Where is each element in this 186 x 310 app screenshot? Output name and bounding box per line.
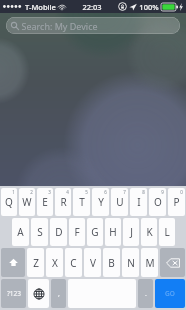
staticText: B (108, 256, 115, 270)
staticText: A (17, 225, 24, 239)
staticText: D (55, 225, 63, 239)
staticText: J (130, 225, 133, 239)
staticText: Q (5, 195, 13, 209)
button[interactable]: D (50, 218, 67, 246)
staticText: C (70, 256, 77, 270)
staticText: T-Mobile (25, 2, 56, 12)
staticText: G (91, 225, 99, 239)
button[interactable]: Search: My Device (6, 17, 180, 34)
staticText: X (52, 256, 58, 270)
staticText: L (164, 225, 170, 239)
staticText: 2 (30, 189, 33, 195)
staticText: K (146, 225, 153, 239)
button[interactable]: Z (27, 248, 44, 277)
staticText: Y (98, 195, 104, 209)
button[interactable]: Change keyboard (28, 279, 49, 308)
button[interactable]: Comma (51, 279, 66, 308)
staticText: 100% (139, 2, 159, 12)
staticText: W (22, 195, 32, 209)
button[interactable]: X (46, 248, 63, 277)
staticText: 22:03 (82, 2, 102, 12)
staticText: 4 (66, 189, 69, 195)
button[interactable]: I (130, 188, 147, 216)
button[interactable]: GO (155, 279, 185, 308)
button[interactable]: Y (92, 188, 109, 216)
button[interactable]: W (19, 188, 35, 216)
staticText: H (109, 225, 117, 239)
button[interactable]: M (141, 248, 158, 277)
button[interactable]: Backspace (160, 248, 185, 277)
button[interactable]: G (87, 218, 103, 246)
button[interactable]: R (55, 188, 71, 216)
button[interactable]: P (168, 188, 185, 216)
button[interactable]: Shift (1, 248, 25, 277)
staticText: , (58, 289, 60, 299)
button[interactable]: J (123, 218, 139, 246)
button[interactable]: E (37, 188, 53, 216)
button[interactable]: V (84, 248, 101, 277)
staticText: 3 (48, 189, 51, 195)
staticText: 7 (123, 189, 126, 195)
staticText: P (173, 195, 180, 209)
button[interactable]: L (159, 218, 175, 246)
button[interactable]: Period (138, 279, 153, 308)
staticText: O (154, 195, 162, 209)
button[interactable]: N (122, 248, 139, 277)
button[interactable]: B (103, 248, 120, 277)
button[interactable]: S (31, 218, 48, 246)
staticText: Search: My Device (21, 20, 98, 32)
staticText: 8 (142, 189, 145, 195)
button[interactable]: T (73, 188, 90, 216)
staticText: 5 (85, 189, 88, 195)
button[interactable]: K (141, 218, 157, 246)
button[interactable]: Symbols (1, 279, 26, 308)
staticText: I (137, 195, 141, 209)
staticText: S (37, 225, 43, 239)
button[interactable]: Q (1, 188, 17, 216)
button[interactable]: F (69, 218, 85, 246)
button[interactable]: A (12, 218, 29, 246)
button[interactable]: C (65, 248, 82, 277)
staticText: R (60, 195, 67, 209)
staticText: Z (33, 256, 39, 270)
staticText: T (79, 195, 85, 209)
staticText: V (90, 256, 96, 270)
staticText: F (74, 225, 80, 239)
staticText: 0 (180, 189, 183, 195)
staticText: 1 (12, 189, 15, 195)
button[interactable]: H (105, 218, 121, 246)
staticText: N (127, 256, 135, 270)
button[interactable]: O (149, 188, 166, 216)
staticText: 6 (104, 189, 107, 195)
button[interactable]: U (111, 188, 128, 216)
staticText: GO (165, 289, 175, 298)
staticText: U (116, 195, 124, 209)
staticText: M (145, 256, 155, 270)
staticText: . (145, 289, 147, 299)
staticText: E (42, 195, 48, 209)
staticText: ?123 (7, 289, 21, 298)
staticText: 9 (161, 189, 164, 195)
